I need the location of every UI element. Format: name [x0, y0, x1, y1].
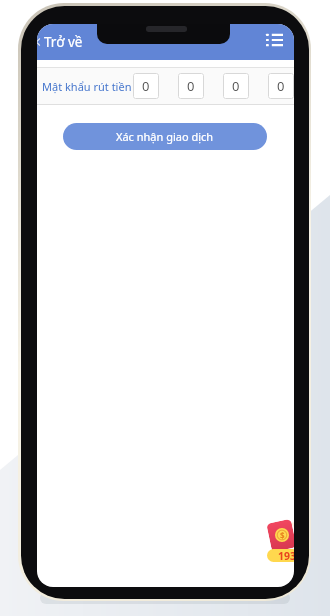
button[interactable]: 0	[133, 73, 159, 99]
staticText: $	[280, 530, 285, 541]
staticText: 193	[278, 549, 294, 562]
staticText: 0	[187, 77, 195, 95]
button[interactable]	[266, 33, 283, 47]
button[interactable]: 0	[268, 73, 294, 99]
button[interactable]: 0	[178, 73, 204, 99]
button[interactable]: 0	[223, 73, 249, 99]
button[interactable]: $	[264, 516, 294, 564]
button[interactable]: Trở về	[37, 33, 83, 51]
staticText: Xác nhận giao dịch	[116, 129, 214, 144]
staticText: 0	[277, 77, 285, 95]
staticText: 0	[232, 77, 240, 95]
button[interactable]: Xác nhận giao dịch	[63, 123, 267, 150]
staticText: 0	[142, 77, 150, 95]
staticText: Trở về	[44, 33, 83, 51]
staticText: Mật khẩu rút tiền	[42, 79, 132, 94]
